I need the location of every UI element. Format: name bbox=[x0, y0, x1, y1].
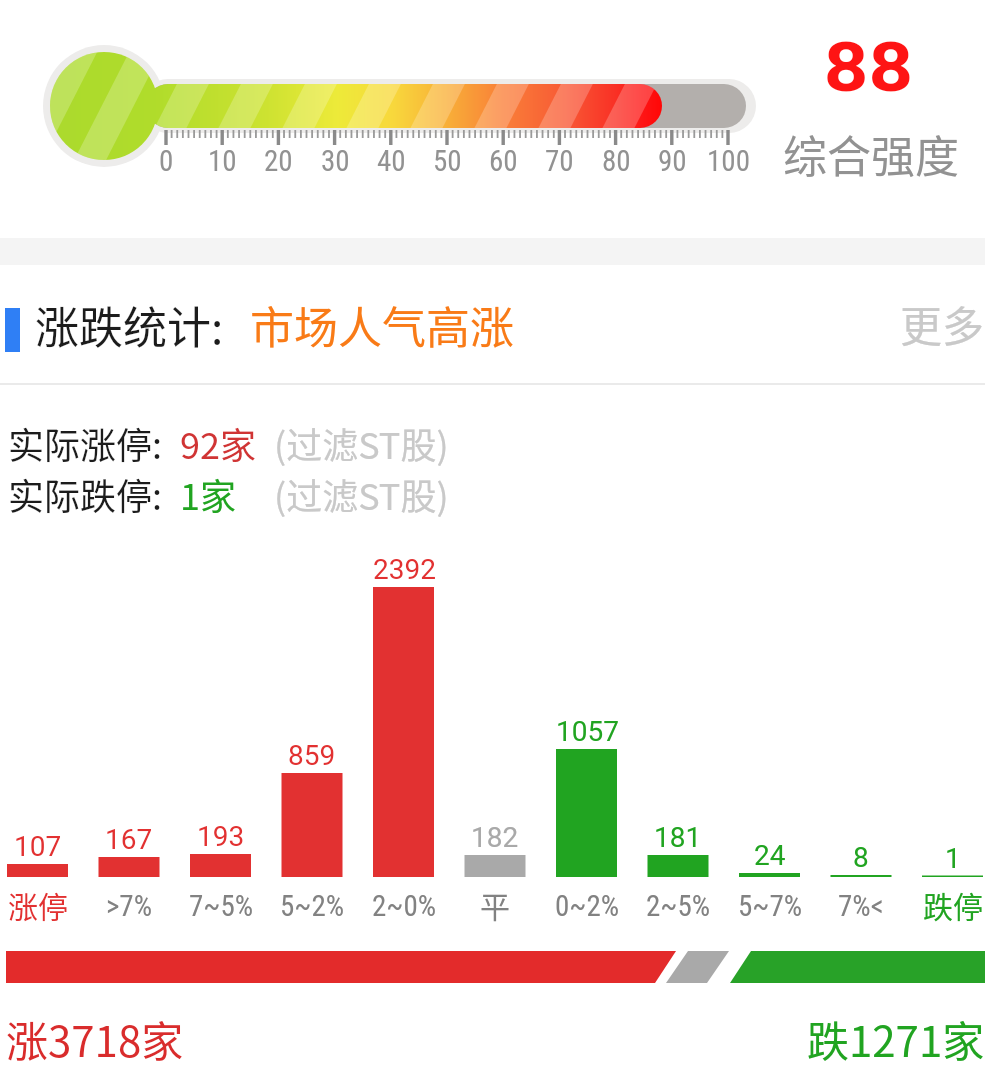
staticText: 70 bbox=[545, 144, 574, 178]
staticText: 182 bbox=[471, 821, 519, 854]
staticText: 40 bbox=[377, 144, 406, 178]
staticText: 80 bbox=[602, 144, 631, 178]
staticText: 2~0% bbox=[372, 889, 437, 923]
staticText: 市场人气高涨 bbox=[250, 293, 514, 357]
staticText: 1家 bbox=[180, 468, 236, 520]
staticText: 跌1271家 bbox=[807, 1008, 985, 1069]
staticText: 7%< bbox=[838, 889, 884, 923]
staticText: >7% bbox=[106, 889, 153, 923]
staticText: 20 bbox=[264, 144, 293, 178]
staticText: 7~5% bbox=[189, 889, 254, 923]
staticText: 167 bbox=[105, 823, 153, 856]
staticText: 24 bbox=[754, 839, 786, 872]
staticText: 涨停 bbox=[8, 883, 68, 926]
staticText: 181 bbox=[654, 821, 702, 854]
staticText: 涨3718家 bbox=[6, 1008, 184, 1069]
staticText: 2~5% bbox=[646, 889, 711, 923]
staticText: 92家 bbox=[180, 417, 256, 469]
staticText: 107 bbox=[14, 830, 62, 863]
staticText: 实际跌停: bbox=[8, 468, 163, 520]
staticText: 10 bbox=[208, 144, 237, 178]
staticText: 30 bbox=[321, 144, 350, 178]
staticText: 5~7% bbox=[738, 889, 803, 923]
staticText: 跌停 bbox=[923, 883, 983, 926]
staticText: 60 bbox=[489, 144, 518, 178]
staticText: 平 bbox=[480, 883, 510, 926]
staticText: (过滤ST股) bbox=[274, 468, 449, 520]
staticText: 实际涨停: bbox=[8, 417, 163, 469]
staticText: 100 bbox=[707, 144, 750, 178]
staticText: 50 bbox=[433, 144, 462, 178]
staticText: 综合强度 bbox=[783, 122, 959, 186]
staticText: 8 bbox=[853, 841, 869, 874]
staticText: 5~2% bbox=[280, 889, 345, 923]
staticText: 涨跌统计: bbox=[35, 293, 224, 357]
staticText: (过滤ST股) bbox=[274, 417, 449, 469]
staticText: 193 bbox=[197, 820, 245, 853]
staticText: 1057 bbox=[556, 715, 619, 748]
staticText: 1 bbox=[945, 842, 961, 875]
staticText: 更多 bbox=[900, 293, 985, 354]
staticText: 2392 bbox=[373, 553, 436, 586]
staticText: 0 bbox=[159, 144, 174, 178]
staticText: 0~2% bbox=[555, 889, 620, 923]
button[interactable]: 更多 bbox=[885, 293, 985, 354]
staticText: 88 bbox=[824, 27, 914, 108]
staticText: 90 bbox=[658, 144, 687, 178]
staticText: 859 bbox=[288, 739, 336, 772]
